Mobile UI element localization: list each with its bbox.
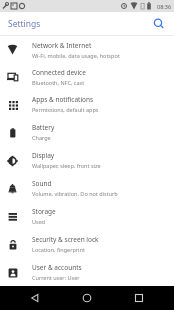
staticText: Security & screen lock	[32, 235, 99, 244]
button[interactable]: Connected device	[0, 63, 174, 90]
staticText: Bluetooth, NFC, cast	[32, 79, 85, 86]
staticText: Current user: User	[32, 274, 80, 281]
button[interactable]: Apps & notifications	[0, 90, 174, 118]
button[interactable]: Display	[0, 146, 174, 174]
staticText: User & accounts	[32, 263, 82, 272]
button[interactable]: Storage	[0, 202, 174, 230]
staticText: Volume, vibration, Do not disturb	[32, 190, 118, 197]
staticText: Battery	[32, 123, 55, 132]
button[interactable]: User & accounts	[0, 258, 174, 286]
staticText: Settings	[8, 18, 41, 30]
button[interactable]: Security & screen lock	[0, 230, 174, 258]
button[interactable]: Sound	[0, 174, 174, 202]
staticText: Wallpaper, sleep, front size	[32, 162, 101, 169]
staticText: Connected device	[32, 68, 86, 77]
button[interactable]	[58, 286, 116, 310]
button[interactable]	[0, 286, 58, 310]
button[interactable]	[116, 286, 174, 310]
button[interactable]: Battery	[0, 118, 174, 146]
staticText: Location, fingerprint	[32, 246, 85, 253]
button[interactable]	[153, 18, 165, 30]
staticText: Sound	[32, 179, 52, 188]
staticText: Storage	[32, 207, 56, 216]
staticText: Wi-Fi, mobile, data usage, hotspot	[32, 52, 120, 59]
staticText: Network & Internet	[32, 41, 92, 50]
staticText: 08:36	[157, 3, 172, 10]
staticText: Display	[32, 151, 55, 160]
staticText: Apps & notifications	[32, 95, 94, 104]
button[interactable]: Network & Internet	[0, 36, 174, 63]
staticText: Used	[32, 218, 46, 225]
staticText: Charge	[32, 134, 51, 141]
staticText: Permissions, default apps	[32, 106, 99, 113]
